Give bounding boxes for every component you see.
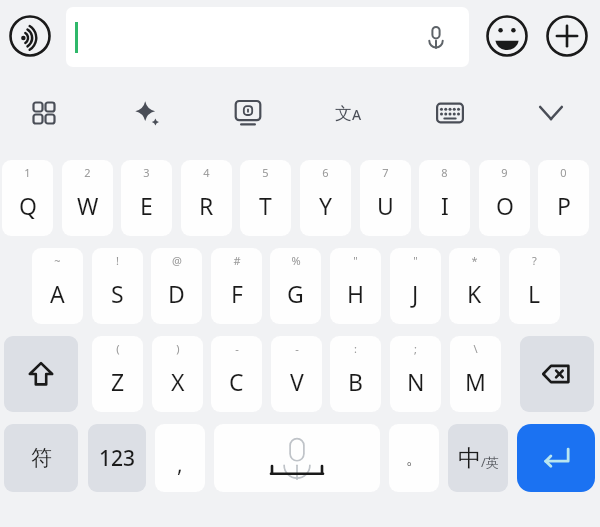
button[interactable]: ! [92,248,143,324]
staticText: V [290,366,304,397]
staticText: # [233,253,241,268]
button[interactable]: Emoji [483,12,531,60]
staticText: F [231,278,243,309]
staticText: A [352,105,362,124]
staticText: 4 [203,165,210,180]
staticText: B [348,366,363,397]
button[interactable]: AI assist [123,89,171,137]
button[interactable]: \ [450,336,501,412]
staticText: 0 [560,165,567,180]
button[interactable]: 5 [240,160,291,236]
button[interactable]: Backspace [520,336,594,412]
staticText: D [168,278,185,309]
button[interactable]: 2 [62,160,113,236]
staticText: 3 [143,165,150,180]
button[interactable]: Voice broadcast [6,12,54,60]
button[interactable]: 0 [538,160,589,236]
staticText: G [287,278,304,309]
button[interactable]: 8 [419,160,470,236]
staticText: : [354,341,357,356]
staticText: - [235,341,239,356]
staticText: 中 [458,444,481,473]
button[interactable]: Translate [324,89,372,137]
button[interactable]: 1 [2,160,53,236]
button[interactable]: 符 [4,424,78,492]
staticText: * [471,253,478,268]
button[interactable]: Enter [517,424,595,492]
button[interactable]: ; [390,336,441,412]
staticText: 2 [84,165,91,180]
staticText: 123 [99,444,136,473]
staticText: - [295,341,299,356]
staticText: 。 [406,448,423,469]
button[interactable]: Shift [4,336,78,412]
staticText: N [407,366,425,397]
staticText: " [353,253,358,268]
button[interactable]: Keyboard layout [426,89,474,137]
button[interactable]: 中 [448,424,508,492]
staticText: U [377,190,394,221]
button[interactable]: Space [214,424,380,492]
staticText: W [77,190,99,221]
button[interactable]: % [270,248,321,324]
button[interactable]: , [155,424,205,492]
staticText: @ [172,253,182,268]
staticText: ) [176,341,180,356]
staticText: L [528,278,541,309]
button[interactable]: @ [151,248,202,324]
button[interactable]: # [211,248,262,324]
staticText: Y [319,190,333,221]
staticText: , [177,450,183,479]
button[interactable]: 4 [181,160,232,236]
staticText: C [229,366,244,397]
staticText: M [465,366,486,397]
button[interactable]: ? [509,248,560,324]
button[interactable]: * [449,248,500,324]
staticText: ( [116,341,120,356]
staticText: Z [111,366,125,397]
button[interactable]: Clipboard [224,89,272,137]
staticText: J [412,278,419,309]
staticText: 5 [262,165,269,180]
button[interactable]: Apps [20,89,68,137]
button[interactable]: " [390,248,441,324]
staticText: E [140,190,153,221]
staticText: 文 [335,103,352,124]
button[interactable]: - [211,336,262,412]
button[interactable]: - [271,336,322,412]
staticText: 7 [382,165,389,180]
button[interactable]: Voice input [66,7,469,67]
button[interactable]: Collapse keyboard [527,89,575,137]
button[interactable]: 3 [121,160,172,236]
button[interactable]: Add [543,12,591,60]
staticText: R [199,190,214,221]
staticText: 9 [501,165,508,180]
button[interactable]: : [330,336,381,412]
button[interactable]: 6 [300,160,351,236]
staticText: T [259,190,272,221]
button[interactable]: Voice input [421,22,451,52]
staticText: ; [414,341,417,356]
staticText: " [413,253,418,268]
staticText: 6 [322,165,329,180]
button[interactable]: 123 [88,424,146,492]
staticText: 符 [31,445,52,471]
button[interactable]: 9 [479,160,530,236]
staticText: ! [116,253,119,268]
staticText: 1 [24,165,31,180]
button[interactable]: " [330,248,381,324]
staticText: Q [19,190,37,221]
button[interactable]: ) [152,336,203,412]
staticText: 8 [441,165,448,180]
button[interactable]: ~ [32,248,83,324]
staticText: \ [473,341,478,356]
staticText: O [496,190,514,221]
staticText: ~ [54,253,61,268]
staticText: /英 [481,453,499,471]
button[interactable]: 7 [360,160,411,236]
staticText: X [171,366,185,397]
staticText: % [291,253,301,268]
button[interactable]: 。 [389,424,439,492]
button[interactable]: ( [92,336,143,412]
staticText: H [347,278,365,309]
